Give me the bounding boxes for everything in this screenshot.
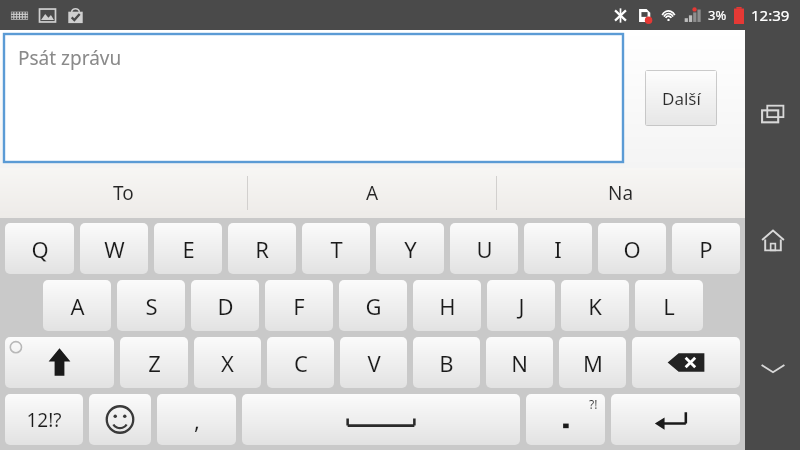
- staticText: 3%: [708, 6, 727, 24]
- button[interactable]: Period: [526, 394, 605, 445]
- button[interactable]: X: [194, 337, 261, 388]
- button[interactable]: Psát zprávu: [4, 34, 623, 162]
- staticText: U: [476, 234, 493, 264]
- staticText: J: [518, 291, 525, 321]
- button[interactable]: L: [635, 280, 703, 331]
- staticText: S: [145, 291, 158, 321]
- button[interactable]: B: [413, 337, 480, 388]
- staticText: Y: [404, 234, 417, 264]
- staticText: Další: [662, 87, 701, 110]
- staticText: Psát zprávu: [18, 45, 122, 71]
- button[interactable]: U: [450, 223, 518, 274]
- button[interactable]: S: [117, 280, 185, 331]
- button[interactable]: Backspace: [632, 337, 740, 388]
- staticText: O: [623, 234, 641, 264]
- button[interactable]: O: [598, 223, 666, 274]
- button[interactable]: Hide keyboard: [745, 340, 800, 395]
- button[interactable]: H: [413, 280, 481, 331]
- button[interactable]: K: [561, 280, 629, 331]
- button[interactable]: Emoji: [89, 394, 151, 445]
- button[interactable]: ,: [157, 394, 236, 445]
- button[interactable]: G: [339, 280, 407, 331]
- button[interactable]: M: [559, 337, 626, 388]
- button[interactable]: N: [486, 337, 553, 388]
- button[interactable]: A: [43, 280, 111, 331]
- staticText: Q: [31, 234, 49, 264]
- button[interactable]: Enter: [611, 394, 740, 445]
- staticText: R: [255, 234, 269, 264]
- staticText: Z: [148, 348, 161, 378]
- staticText: B: [439, 348, 454, 378]
- staticText: W: [104, 234, 125, 264]
- button[interactable]: F: [265, 280, 333, 331]
- button[interactable]: A: [248, 168, 496, 218]
- staticText: G: [365, 291, 382, 321]
- button[interactable]: D: [191, 280, 259, 331]
- button[interactable]: To: [0, 168, 247, 218]
- staticText: 12!?: [26, 407, 62, 433]
- staticText: ?!: [589, 396, 598, 412]
- staticText: F: [293, 291, 305, 321]
- staticText: H: [439, 291, 456, 321]
- staticText: To: [113, 180, 134, 206]
- staticText: D: [217, 291, 234, 321]
- button[interactable]: Další: [645, 70, 717, 126]
- button[interactable]: T: [302, 223, 370, 274]
- staticText: K: [588, 291, 602, 321]
- staticText: C: [294, 348, 308, 378]
- staticText: P: [699, 234, 713, 264]
- staticText: 12:39: [751, 5, 790, 25]
- staticText: T: [330, 234, 343, 264]
- staticText: N: [511, 348, 528, 378]
- button[interactable]: Recent apps: [745, 86, 800, 141]
- button[interactable]: Shift: [5, 337, 114, 388]
- button[interactable]: C: [267, 337, 334, 388]
- button[interactable]: Space: [242, 394, 520, 445]
- button[interactable]: Z: [120, 337, 188, 388]
- button[interactable]: Na: [497, 168, 745, 218]
- button[interactable]: Y: [376, 223, 444, 274]
- button[interactable]: E: [154, 223, 222, 274]
- staticText: A: [70, 291, 85, 321]
- button[interactable]: 12!?: [5, 394, 83, 445]
- staticText: M: [583, 348, 603, 378]
- button[interactable]: V: [340, 337, 407, 388]
- staticText: A: [366, 180, 379, 206]
- staticText: I: [554, 234, 562, 264]
- staticText: X: [221, 348, 234, 378]
- staticText: Na: [608, 180, 634, 206]
- button[interactable]: Home: [745, 213, 800, 268]
- button[interactable]: W: [80, 223, 148, 274]
- staticText: ,: [194, 405, 200, 435]
- button[interactable]: I: [524, 223, 592, 274]
- button[interactable]: J: [487, 280, 555, 331]
- staticText: V: [367, 348, 381, 378]
- button[interactable]: Q: [5, 223, 74, 274]
- button[interactable]: R: [228, 223, 296, 274]
- staticText: L: [663, 291, 675, 321]
- button[interactable]: P: [672, 223, 740, 274]
- staticText: E: [182, 234, 195, 264]
